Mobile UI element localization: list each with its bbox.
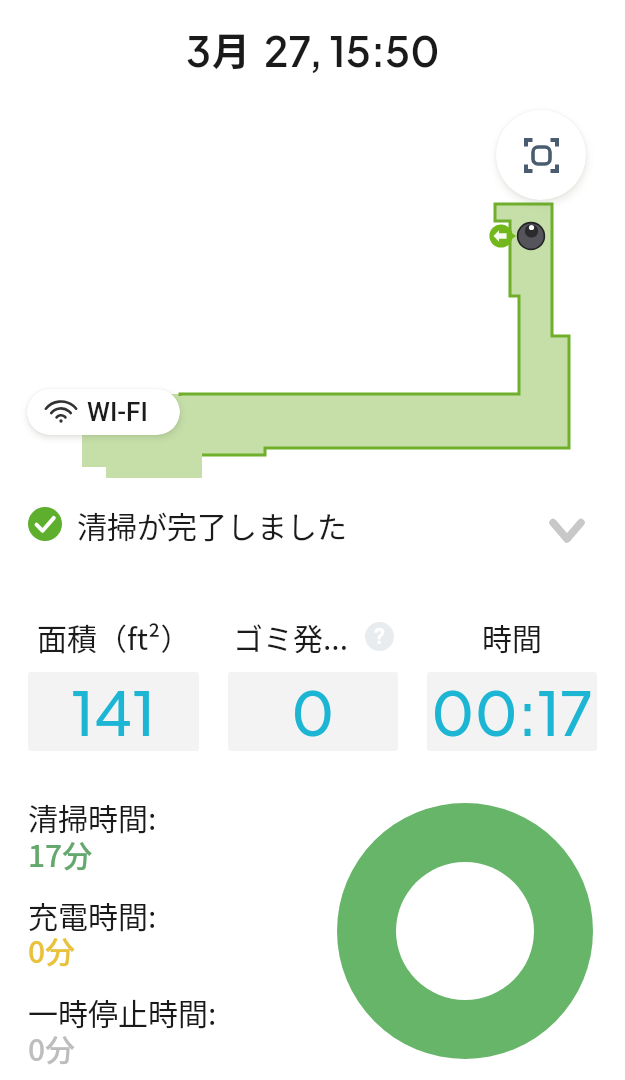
- staticText: 141: [71, 674, 156, 750]
- button[interactable]: WI-FI: [27, 389, 180, 435]
- staticText: 清掃時間:: [28, 795, 157, 838]
- button[interactable]: Collapse: [539, 496, 595, 552]
- staticText: 0分: [28, 1026, 76, 1069]
- staticText: 充電時間:: [28, 893, 157, 936]
- staticText: ゴミ発...: [233, 615, 349, 658]
- staticText: WI-FI: [87, 397, 148, 427]
- button[interactable]: Fullscreen map: [496, 110, 586, 200]
- staticText: 面積（ft²）: [37, 615, 191, 658]
- staticText: 一時停止時間:: [28, 990, 217, 1033]
- staticText: 月: [212, 21, 251, 76]
- staticText: 00:17: [431, 674, 593, 750]
- staticText: 3: [186, 24, 212, 76]
- button[interactable]: 清掃が完了しました: [0, 478, 625, 570]
- staticText: ?: [374, 624, 385, 650]
- staticText: 0: [291, 674, 335, 750]
- button[interactable]: Help: [365, 622, 394, 651]
- staticText: 27, 15:50: [264, 24, 440, 76]
- staticText: 0分: [28, 928, 76, 971]
- staticText: 時間: [482, 615, 542, 658]
- staticText: 清掃が完了しました: [77, 503, 347, 546]
- staticText: 17分: [28, 832, 93, 875]
